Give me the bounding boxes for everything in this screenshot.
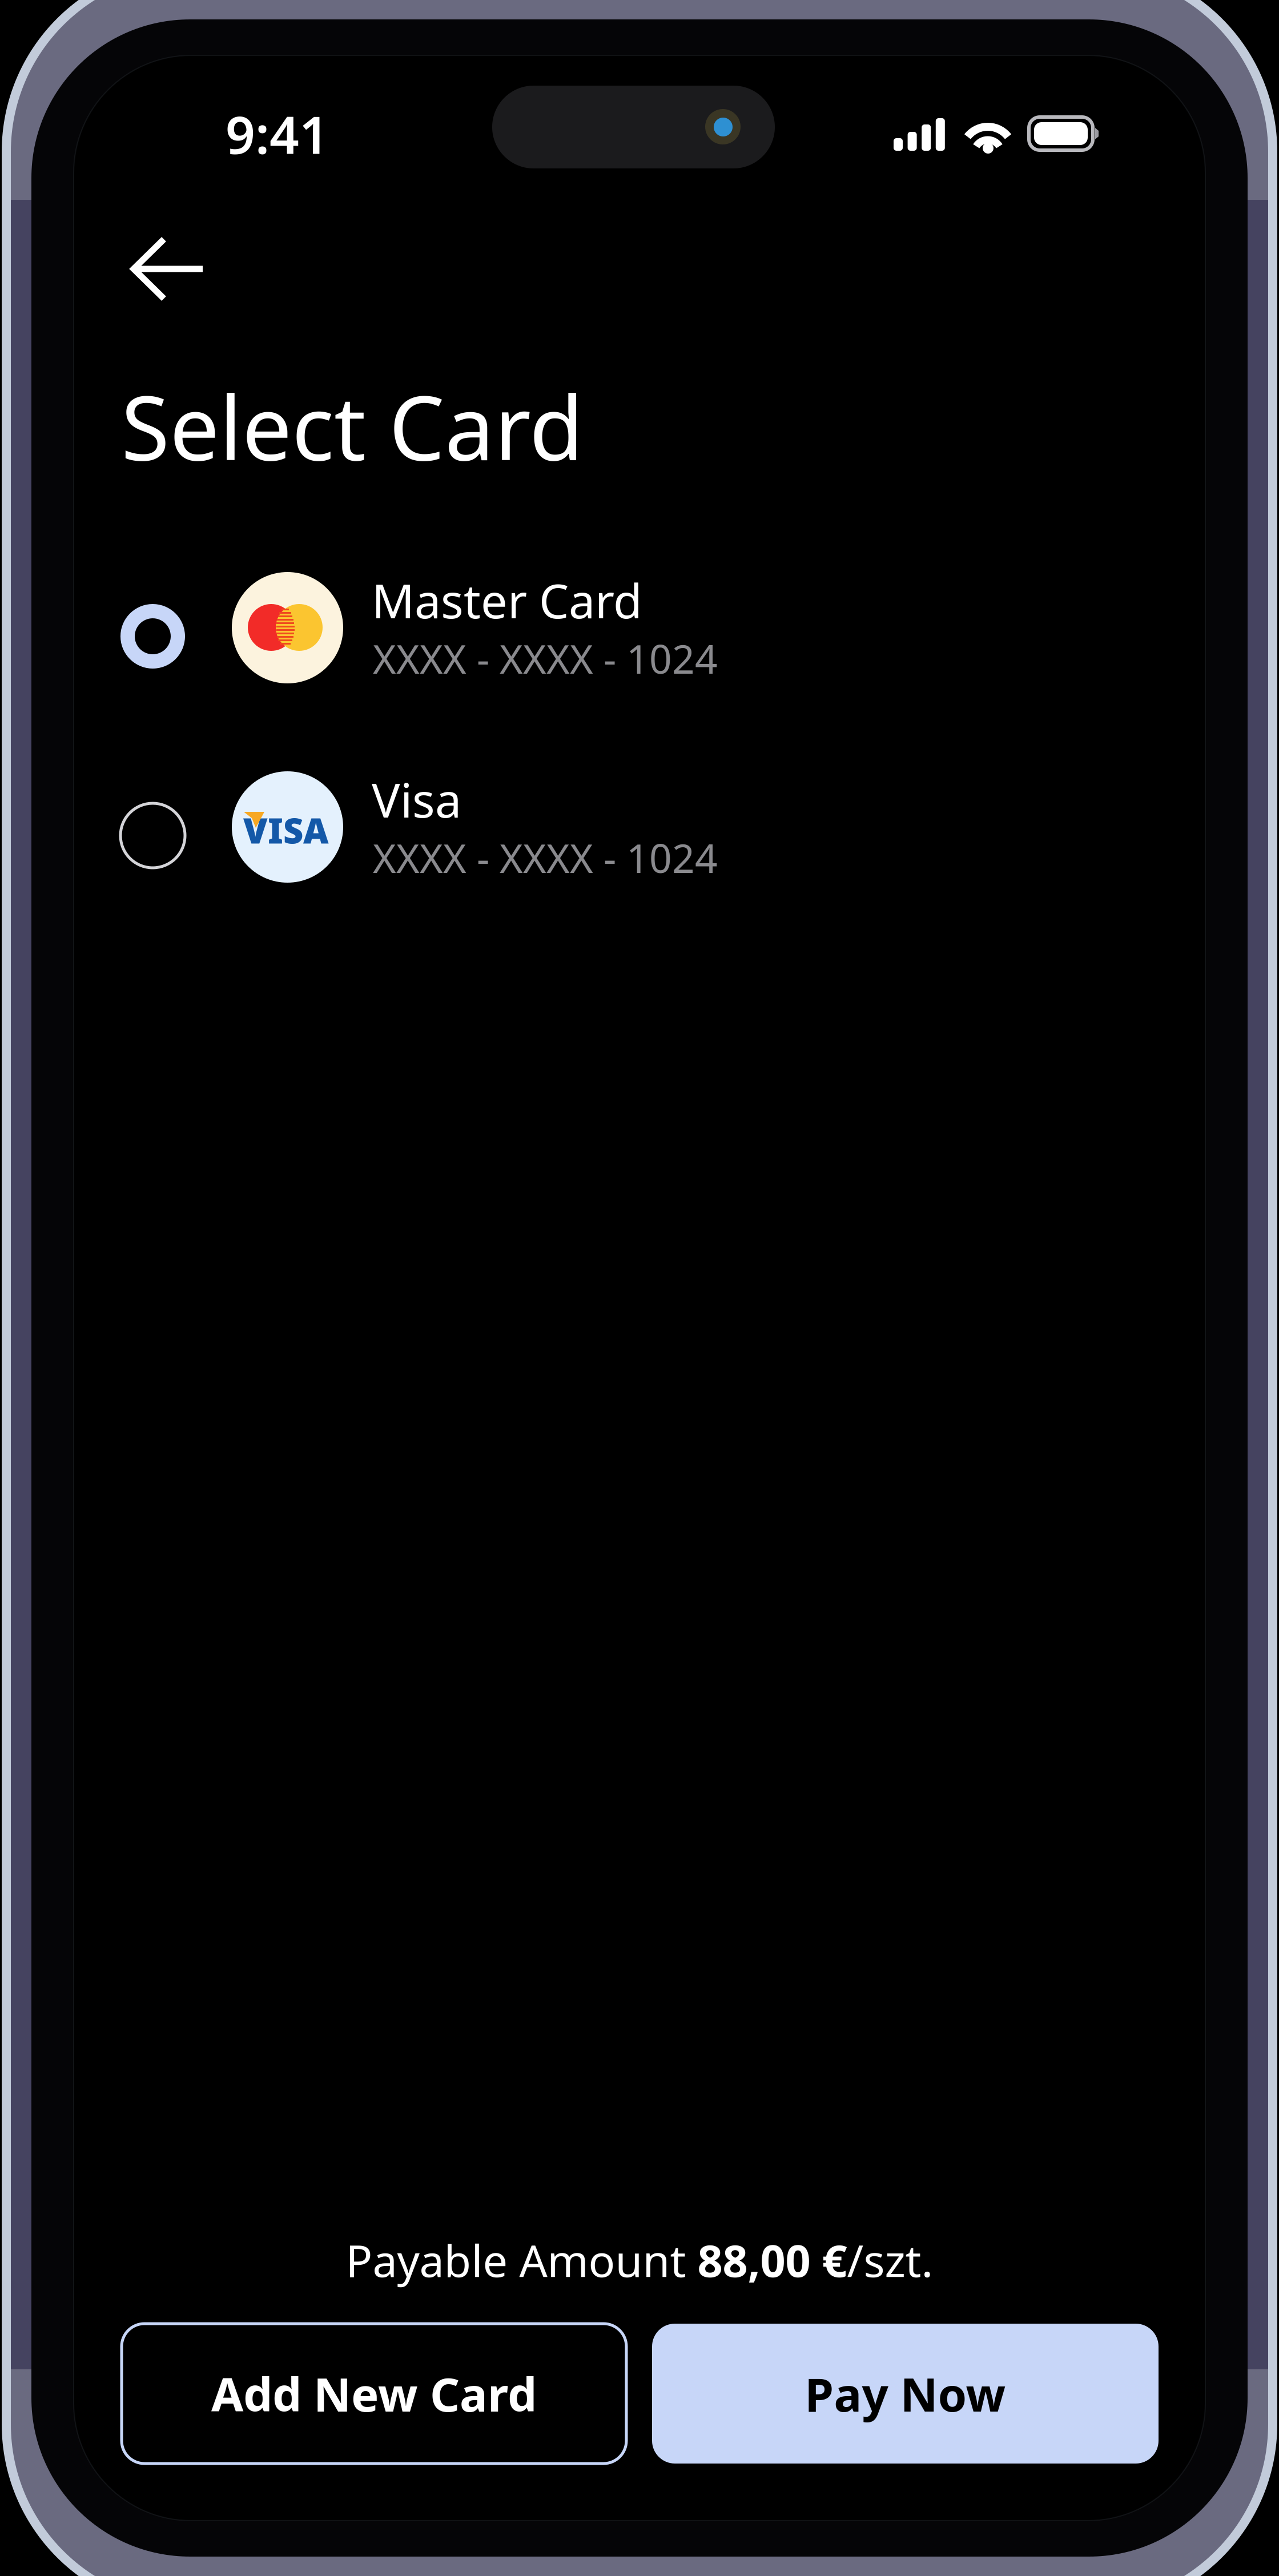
button[interactable]: Add New Card — [122, 2324, 626, 2464]
staticText: 9:41 — [226, 99, 329, 168]
staticText: 88,00 € — [697, 2231, 847, 2289]
staticText: Visa — [372, 768, 461, 831]
staticText: /szt. — [847, 2231, 933, 2289]
staticText: Payable Amount — [346, 2231, 697, 2289]
button[interactable]: Master Card, XXXX - XXXX - 1024 — [74, 55, 827, 198]
button[interactable]: Pay Now — [652, 2324, 1159, 2464]
staticText: XXXX - XXXX - 1024 — [373, 831, 718, 884]
staticText: Master Card — [372, 569, 642, 631]
staticText: Select Card — [121, 367, 584, 484]
button[interactable]: Visa, XXXX - XXXX - 1024 — [74, 255, 827, 397]
staticText: Add New Card — [211, 2363, 537, 2424]
staticText: VISA — [243, 807, 329, 853]
button[interactable]: Back — [95, 206, 238, 332]
staticText: XXXX - XXXX - 1024 — [373, 632, 718, 685]
staticText: Pay Now — [805, 2363, 1006, 2424]
